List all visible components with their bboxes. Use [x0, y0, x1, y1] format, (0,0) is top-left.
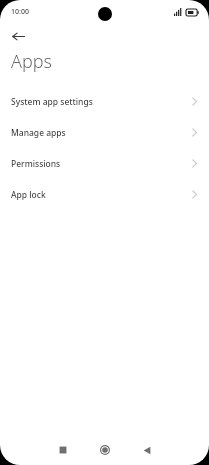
staticText: System app settings	[11, 96, 192, 108]
button[interactable]: Back	[126, 435, 168, 465]
staticText: Apps	[11, 49, 52, 74]
button[interactable]: Home	[84, 435, 126, 465]
staticText: App lock	[11, 189, 192, 201]
button[interactable]: Back	[6, 24, 30, 48]
button[interactable]: Manage apps	[0, 117, 209, 148]
button[interactable]: Recent apps	[42, 435, 84, 465]
staticText: Manage apps	[11, 127, 192, 139]
button[interactable]: App lock	[0, 179, 209, 210]
staticText: Permissions	[11, 158, 192, 170]
button[interactable]: Permissions	[0, 148, 209, 179]
staticText: 10:00	[11, 7, 29, 17]
button[interactable]: System app settings	[0, 86, 209, 117]
